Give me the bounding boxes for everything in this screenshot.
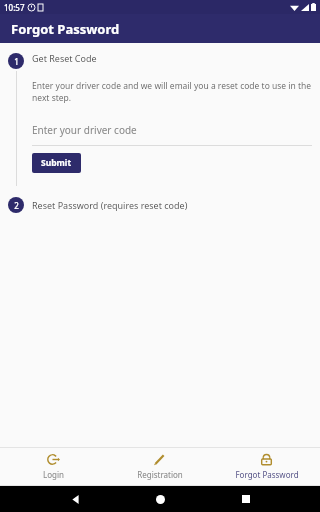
other: Registration [153,453,166,466]
button[interactable]: Submit [32,153,81,173]
other: Login [47,453,60,466]
staticText: 1 [14,56,19,67]
staticText: Enter your driver code and we will email… [32,80,312,104]
staticText: Enter your driver code [32,123,137,137]
button[interactable]: Registration [106,448,213,485]
staticText: 2 [14,200,19,211]
button[interactable]: Home [149,488,171,510]
staticText: Forgot Password [11,20,120,38]
staticText: Forgot Password [235,469,299,480]
button[interactable]: Back [64,488,86,510]
button[interactable]: Login [0,448,106,485]
button[interactable]: Forgot Password [213,448,320,485]
button[interactable]: 2 [0,197,320,213]
button[interactable]: Recent apps [235,488,257,510]
other: Forgot Password [260,453,273,466]
staticText: Submit [41,157,72,169]
staticText: 10:57 [4,2,25,13]
staticText: Reset Password (requires reset code) [32,199,188,211]
staticText: Get Reset Code [32,52,97,64]
button[interactable]: Enter your driver code [32,123,312,146]
staticText: Login [43,469,64,480]
staticText: Registration [137,469,183,480]
